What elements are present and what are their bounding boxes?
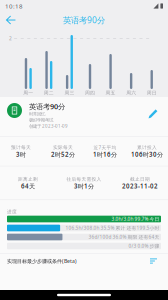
- staticText: 周日: [147, 90, 157, 96]
- staticText: 极好学期考试: [29, 117, 53, 123]
- staticText: 实现目标最少步骤或条件(Beta): [7, 257, 77, 264]
- staticText: 106.5h/308.0h 35.5% 累计 还有199.5小时: [65, 225, 159, 231]
- button[interactable]: Back: [0, 12, 22, 28]
- staticText: 1时16分: [93, 150, 117, 159]
- staticText: 进度: [7, 209, 17, 215]
- staticText: 英语考90分: [29, 101, 65, 111]
- staticText: 2023-11-02: [122, 182, 158, 190]
- staticText: 截止日期: [130, 176, 150, 182]
- staticText: 周五: [106, 90, 116, 96]
- staticText: 创建于 2023-01-09: [29, 123, 68, 129]
- staticText: 周六: [126, 90, 136, 96]
- staticText: 3.0h/3.0h 99.7% 今日: [111, 216, 159, 222]
- staticText: 距离止剩: [18, 176, 38, 182]
- staticText: 3时1分: [74, 182, 94, 190]
- staticText: 10:18: [5, 2, 23, 10]
- staticText: 64天: [21, 182, 35, 190]
- staticText: 往后每天需投入: [66, 176, 101, 182]
- staticText: 实际每天: [53, 145, 73, 150]
- button[interactable]: Edit: [146, 106, 160, 122]
- staticText: 0/3 0.0% 步骤: [128, 243, 159, 249]
- button[interactable]: Sort: [147, 255, 160, 266]
- staticText: 2: [9, 35, 12, 41]
- staticText: 累计投入: [137, 145, 157, 150]
- staticText: 106时30分: [131, 150, 163, 159]
- staticText: 周一: [23, 90, 33, 96]
- staticText: 时常回忆: [29, 111, 45, 117]
- staticText: 周四: [85, 90, 95, 96]
- staticText: 近7天平均: [93, 144, 116, 151]
- staticText: 预计每天: [11, 145, 31, 150]
- staticText: 英语考90分: [63, 14, 105, 26]
- staticText: 周二: [44, 90, 54, 96]
- staticText: 2时52分: [51, 150, 75, 159]
- staticText: 3时: [16, 150, 26, 159]
- staticText: 36d/100d 36.0% 期限 还有64天: [88, 234, 159, 240]
- staticText: 周三: [64, 90, 74, 96]
